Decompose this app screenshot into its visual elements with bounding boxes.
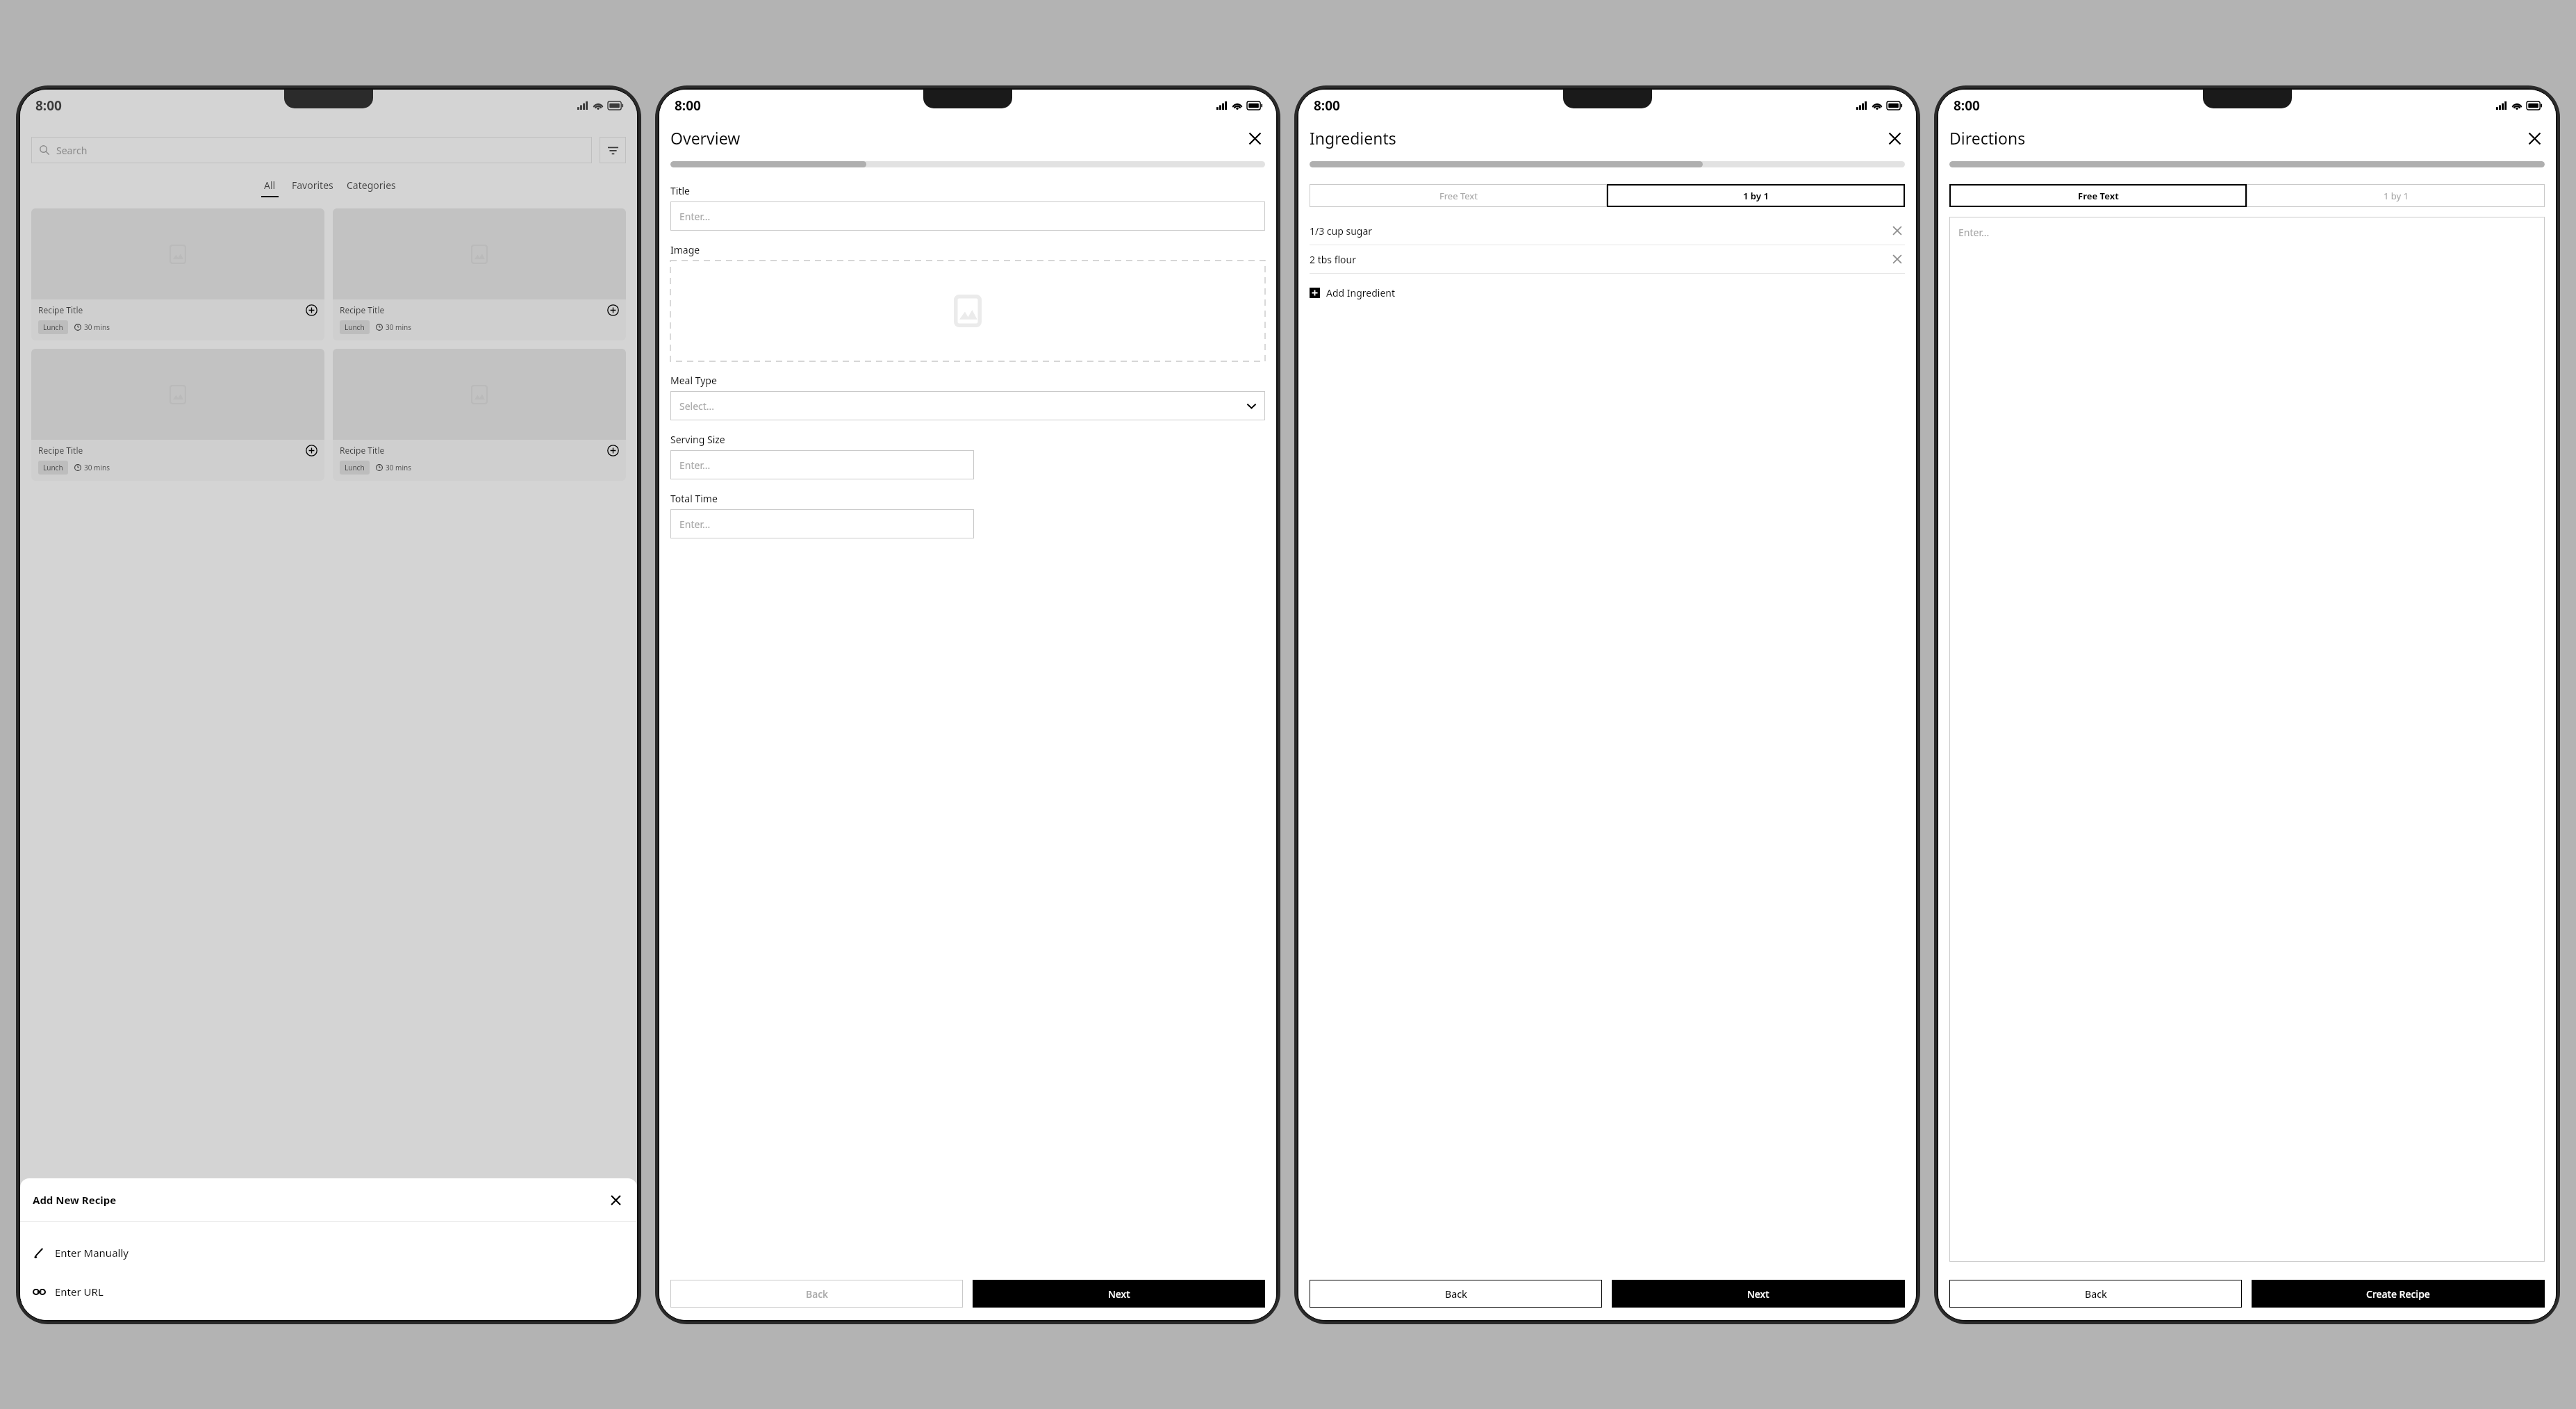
button[interactable]: 1 by 1	[1607, 184, 1905, 207]
staticText: 30 mins	[84, 463, 110, 472]
staticText: Overview	[670, 127, 741, 149]
staticText: Lunch	[43, 322, 63, 332]
button[interactable]: Recipe Title	[31, 208, 324, 340]
staticText: 1/3 cup sugar	[1310, 224, 1373, 238]
button[interactable]: Add Ingredient	[1310, 283, 1396, 302]
button[interactable]: Close	[1244, 128, 1265, 149]
staticText: Recipe Title	[38, 445, 83, 456]
staticText: Next	[1108, 1287, 1130, 1301]
staticText: Free Text	[2078, 190, 2119, 202]
staticText: Enter...	[1958, 226, 1990, 239]
staticText: Meal Type	[670, 374, 717, 387]
button[interactable]: Back	[670, 1280, 963, 1308]
staticText: Enter...	[679, 518, 711, 531]
staticText: 8:00	[1314, 97, 1340, 115]
staticText: Image	[670, 243, 700, 256]
staticText: Back	[806, 1287, 828, 1301]
button[interactable]: Categories	[347, 179, 396, 197]
staticText: Title	[670, 184, 690, 197]
button[interactable]: Search	[31, 137, 592, 163]
staticText: Free Text	[1439, 190, 1478, 202]
button[interactable]: Enter...	[670, 450, 974, 479]
button[interactable]: Create Recipe	[2252, 1280, 2545, 1308]
button[interactable]: 1/3 cup sugar	[1310, 217, 1905, 245]
staticText: 8:00	[675, 97, 701, 115]
staticText: All	[264, 179, 276, 192]
button[interactable]: Select...	[670, 391, 1265, 420]
button[interactable]: Enter...	[1949, 217, 2545, 1262]
button[interactable]: 2 tbs flour	[1310, 245, 1905, 273]
staticText: 8:00	[1954, 97, 1980, 115]
staticText: Directions	[1949, 127, 2026, 149]
staticText: Select...	[679, 399, 715, 413]
staticText: Recipe Title	[340, 304, 385, 315]
staticText: 30 mins	[386, 322, 411, 332]
button[interactable]: Close	[2524, 128, 2545, 149]
staticText: 1 by 1	[2384, 190, 2409, 202]
staticText: 30 mins	[386, 463, 411, 472]
staticText: Enter URL	[55, 1285, 104, 1299]
staticText: Next	[1747, 1287, 1769, 1301]
staticText: Ingredients	[1310, 127, 1396, 149]
button[interactable]: Add recipe	[306, 445, 317, 456]
staticText: Recipe Title	[38, 304, 83, 315]
button[interactable]: Free Text	[1949, 184, 2247, 207]
button[interactable]: Enter...	[670, 509, 974, 538]
button[interactable]: All	[261, 179, 279, 197]
staticText: 2 tbs flour	[1310, 253, 1356, 266]
staticText: Enter...	[679, 459, 711, 472]
staticText: Back	[1445, 1287, 1467, 1301]
button[interactable]: Remove ingredient	[1890, 223, 1905, 238]
staticText: Search	[56, 144, 88, 157]
staticText: Lunch	[43, 463, 63, 472]
button[interactable]: Recipe Title	[333, 208, 626, 340]
button[interactable]: Free Text	[1310, 184, 1607, 207]
button[interactable]: Enter Manually	[20, 1240, 637, 1265]
button[interactable]: Next	[973, 1280, 1265, 1308]
staticText: Lunch	[345, 322, 365, 332]
staticText: Enter Manually	[55, 1246, 129, 1260]
button[interactable]: Favorites	[292, 179, 333, 197]
staticText: Enter...	[679, 210, 711, 223]
button[interactable]: 1 by 1	[2247, 184, 2545, 207]
button[interactable]: Back	[1310, 1280, 1602, 1308]
button[interactable]: Add recipe	[306, 304, 317, 316]
staticText: Lunch	[345, 463, 365, 472]
button[interactable]: Add recipe	[607, 304, 619, 316]
staticText: Recipe Title	[340, 445, 385, 456]
staticText: 1 by 1	[1743, 190, 1769, 202]
staticText: Favorites	[292, 179, 333, 192]
staticText: Back	[2085, 1287, 2107, 1301]
button[interactable]: Back	[1949, 1280, 2242, 1308]
staticText: Add New Recipe	[33, 1193, 117, 1207]
button[interactable]: Recipe Title	[333, 349, 626, 481]
button[interactable]: Filter	[600, 137, 626, 163]
button[interactable]: Enter URL	[20, 1279, 637, 1304]
button[interactable]: Add recipe	[607, 445, 619, 456]
staticText: Total Time	[670, 492, 718, 505]
staticText: Categories	[347, 179, 396, 192]
staticText: Add Ingredient	[1326, 286, 1396, 299]
staticText: Create Recipe	[2366, 1287, 2430, 1301]
button[interactable]: Remove ingredient	[1890, 252, 1905, 267]
button[interactable]: Recipe Title	[31, 349, 324, 481]
button[interactable]: Upload image	[670, 261, 1265, 361]
staticText: Serving Size	[670, 433, 725, 446]
staticText: 8:00	[35, 97, 62, 115]
staticText: 30 mins	[84, 322, 110, 332]
button[interactable]: Close	[606, 1191, 625, 1209]
button[interactable]: Next	[1612, 1280, 1905, 1308]
button[interactable]: Close	[1884, 128, 1905, 149]
button[interactable]: Enter...	[670, 201, 1265, 231]
